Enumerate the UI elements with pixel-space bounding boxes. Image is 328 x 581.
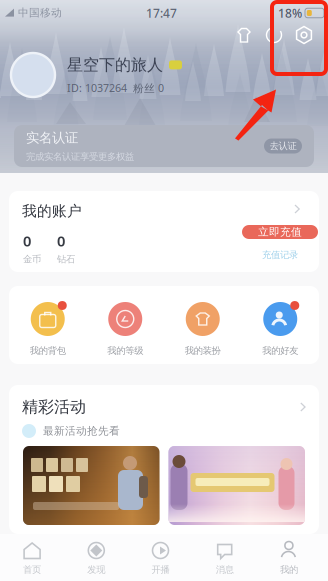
button[interactable]: 我的背包 bbox=[9, 286, 86, 364]
button[interactable]: 我的好友 bbox=[241, 286, 319, 364]
staticText: 我的好友 bbox=[262, 345, 298, 356]
button[interactable]: 我的 bbox=[257, 534, 321, 581]
button[interactable]: 活动二 bbox=[168, 446, 305, 525]
button[interactable]: 开播 bbox=[128, 534, 193, 581]
staticText: 最新活动抢先看 bbox=[43, 424, 120, 437]
staticText: 钻石 bbox=[57, 253, 75, 265]
staticText: 我的装扮 bbox=[185, 345, 221, 356]
staticText: 精彩活动 bbox=[22, 397, 86, 417]
staticText: 充值记录 bbox=[262, 249, 298, 261]
button[interactable]: 首页 bbox=[0, 534, 64, 581]
staticText: 星空下的旅人 bbox=[67, 55, 163, 75]
button[interactable]: 我的账户 bbox=[0, 191, 328, 272]
staticText: 17:47 bbox=[146, 5, 177, 21]
staticText: 立即充值 bbox=[258, 225, 302, 238]
staticText: 我的账户 bbox=[22, 202, 82, 220]
button[interactable]: 最新活动抢先看 bbox=[9, 416, 319, 446]
staticText: 消息 bbox=[216, 564, 234, 575]
button[interactable]: 实名认证 bbox=[0, 125, 328, 167]
staticText: 完成实名认证享受更多权益 bbox=[26, 151, 134, 162]
button[interactable]: 发现 bbox=[64, 534, 128, 581]
button[interactable]: Wardrobe bbox=[229, 20, 259, 50]
button[interactable]: 我的等级 bbox=[86, 286, 164, 364]
staticText: 0 bbox=[23, 231, 31, 250]
staticText: ID: 1037264 粉丝 0 bbox=[67, 81, 164, 95]
button[interactable]: 立即充值 bbox=[242, 225, 318, 239]
staticText: 开播 bbox=[151, 564, 169, 575]
staticText: 我的等级 bbox=[107, 345, 143, 356]
staticText: 我的 bbox=[280, 564, 298, 575]
button[interactable]: 消息 bbox=[193, 534, 257, 581]
staticText: 我的背包 bbox=[30, 345, 66, 356]
staticText: 发现 bbox=[87, 564, 105, 575]
staticText: 18% bbox=[278, 5, 302, 21]
staticText: 首页 bbox=[23, 564, 41, 575]
staticText: 实名认证 bbox=[26, 130, 78, 146]
staticText: 中国移动 bbox=[18, 6, 62, 19]
button[interactable]: 充值记录 bbox=[258, 250, 302, 260]
button[interactable]: Settings bbox=[289, 20, 319, 50]
button[interactable]: 活动一 bbox=[23, 446, 159, 525]
staticText: 去认证 bbox=[269, 140, 296, 152]
staticText: 金币 bbox=[23, 253, 41, 265]
button[interactable]: Refresh bbox=[259, 20, 289, 50]
staticText: 0 bbox=[57, 231, 65, 250]
button[interactable]: 我的装扮 bbox=[164, 286, 241, 364]
